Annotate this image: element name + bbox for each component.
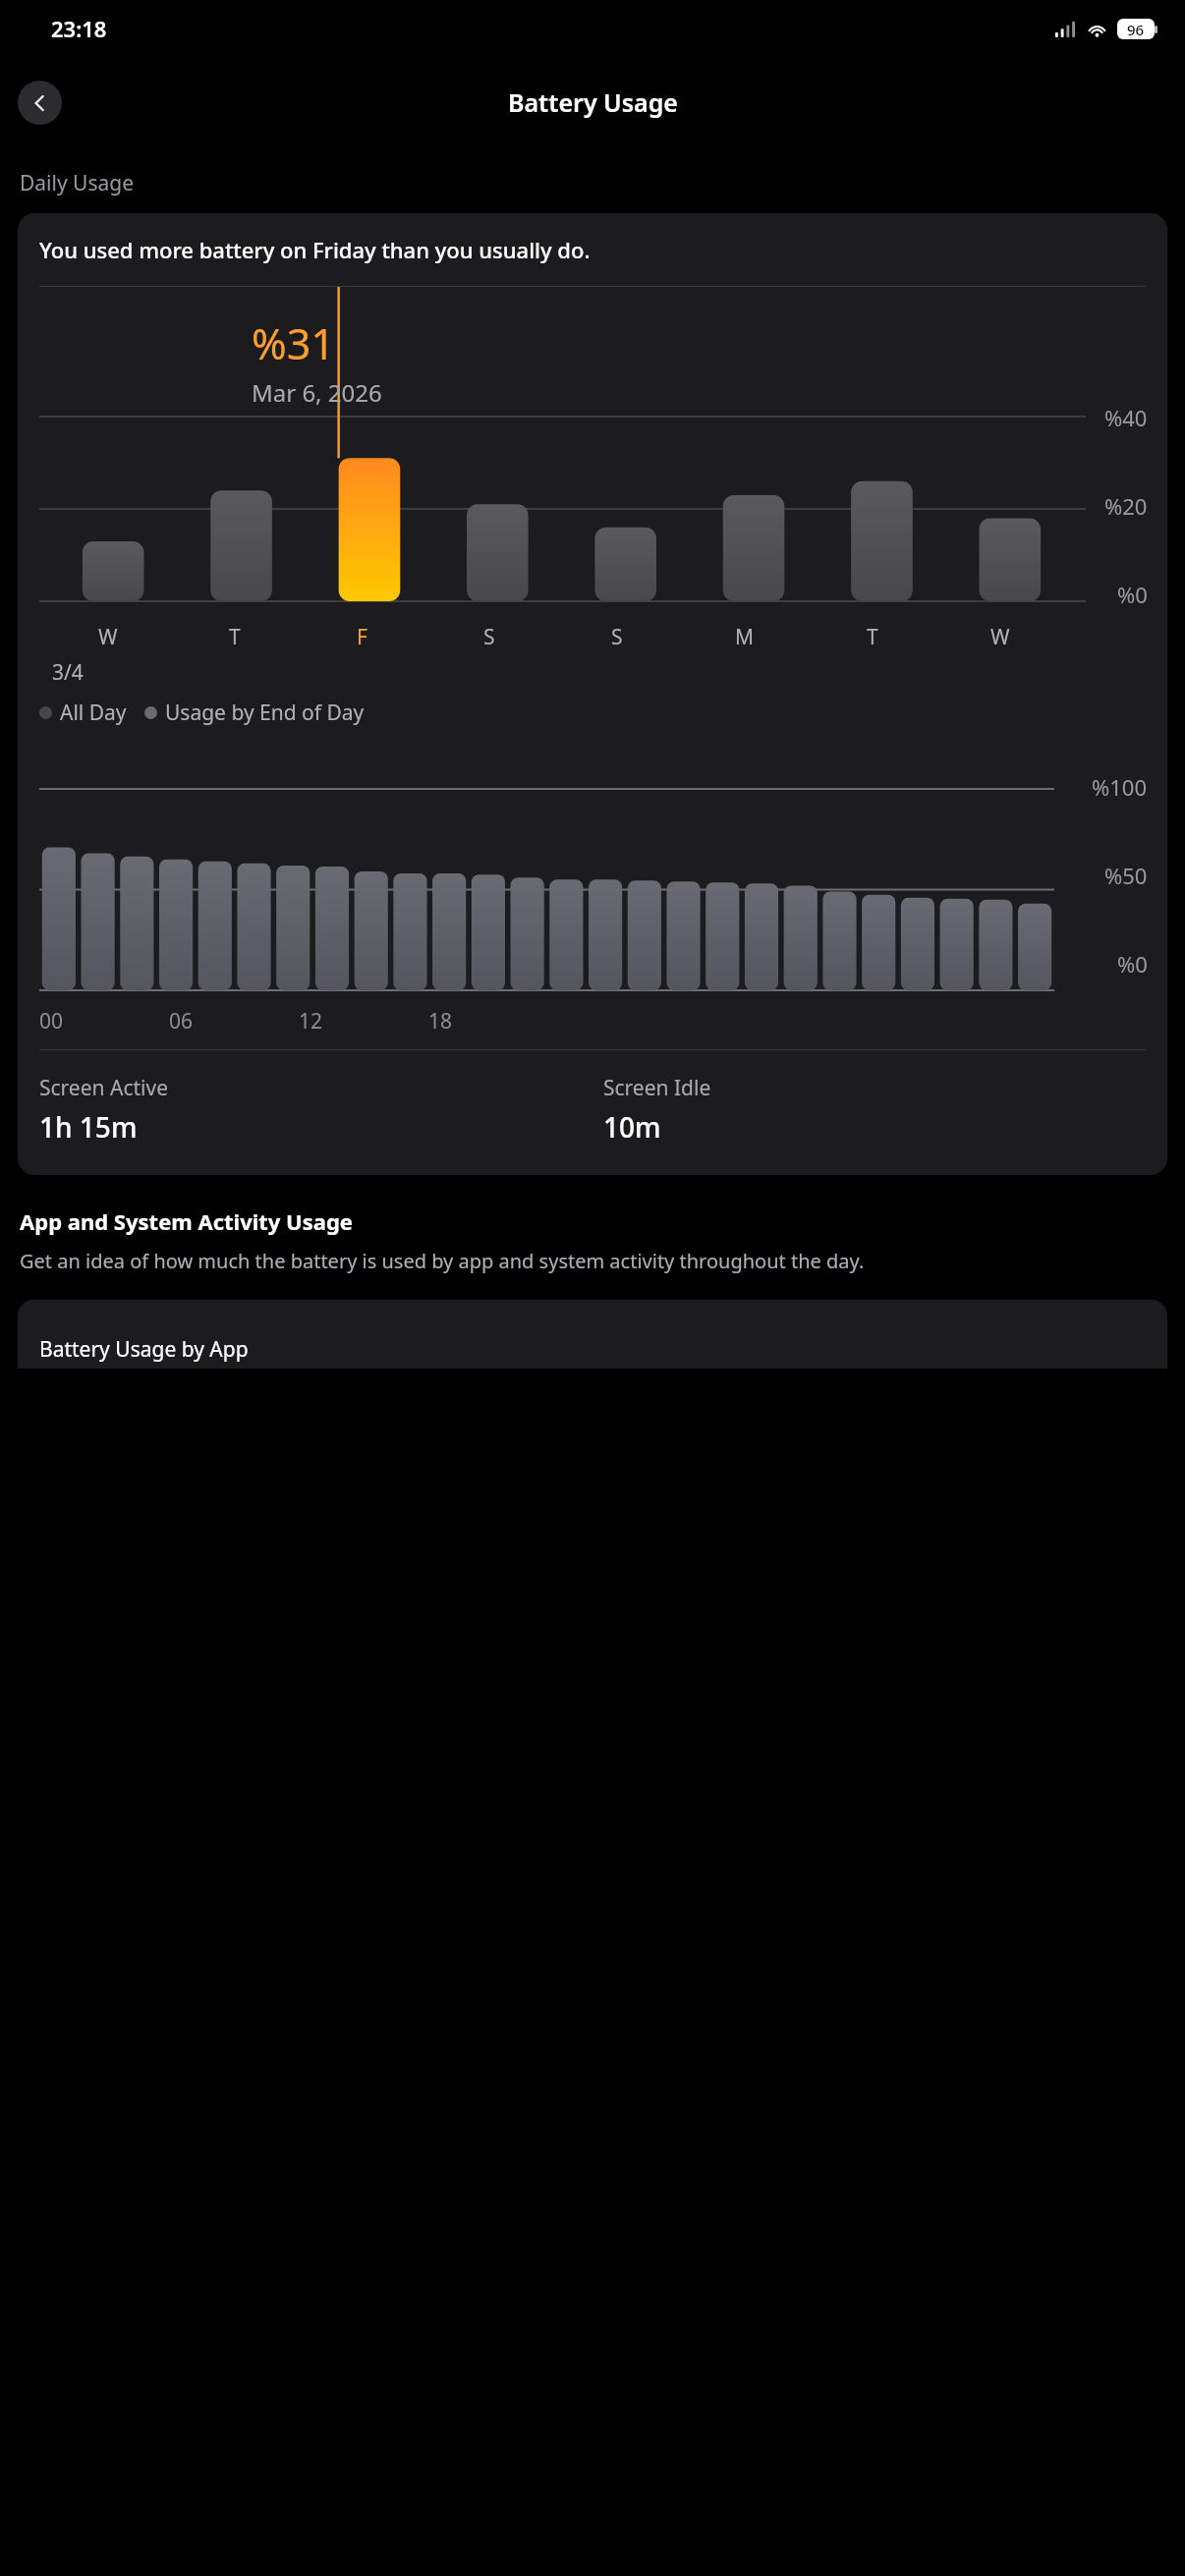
staticText: W (990, 623, 1010, 651)
staticText: %20 (1104, 491, 1148, 521)
staticText: %100 (1092, 772, 1148, 802)
staticText: S (611, 623, 623, 651)
staticText: 18 (428, 1007, 453, 1036)
staticText: W (98, 623, 118, 651)
staticText: Screen Idle (603, 1074, 711, 1102)
staticText: 12 (299, 1007, 323, 1036)
staticText: %40 (1104, 403, 1148, 432)
staticText: Battery Usage (508, 85, 678, 119)
button[interactable]: Battery Usage by App (18, 1300, 1167, 1369)
staticText: M (735, 623, 755, 651)
staticText: T (867, 623, 878, 651)
staticText: Daily Usage (20, 169, 135, 197)
staticText: S (483, 623, 495, 651)
button[interactable]: Back (18, 81, 62, 125)
staticText: 23:18 (51, 14, 107, 43)
staticText: 00 (39, 1007, 64, 1036)
staticText: Battery Usage by App (39, 1335, 249, 1364)
staticText: %0 (1117, 949, 1148, 979)
staticText: Screen Active (39, 1074, 168, 1102)
staticText: Mar 6, 2026 (252, 376, 382, 409)
staticText: All Day (60, 699, 127, 727)
staticText: App and System Activity Usage (20, 1206, 353, 1236)
staticText: T (229, 623, 241, 651)
staticText: %50 (1104, 861, 1148, 890)
staticText: You used more battery on Friday than you… (39, 235, 591, 264)
staticText: 96 (1127, 20, 1145, 39)
staticText: 3/4 (52, 658, 84, 687)
staticText: %31 (252, 314, 335, 372)
staticText: Get an idea of how much the battery is u… (20, 1248, 865, 1274)
staticText: 10m (603, 1108, 661, 1146)
staticText: %0 (1117, 580, 1148, 609)
staticText: F (357, 623, 367, 651)
staticText: 1h 15m (39, 1108, 138, 1146)
staticText: 06 (169, 1007, 194, 1036)
staticText: Usage by End of Day (165, 699, 365, 727)
